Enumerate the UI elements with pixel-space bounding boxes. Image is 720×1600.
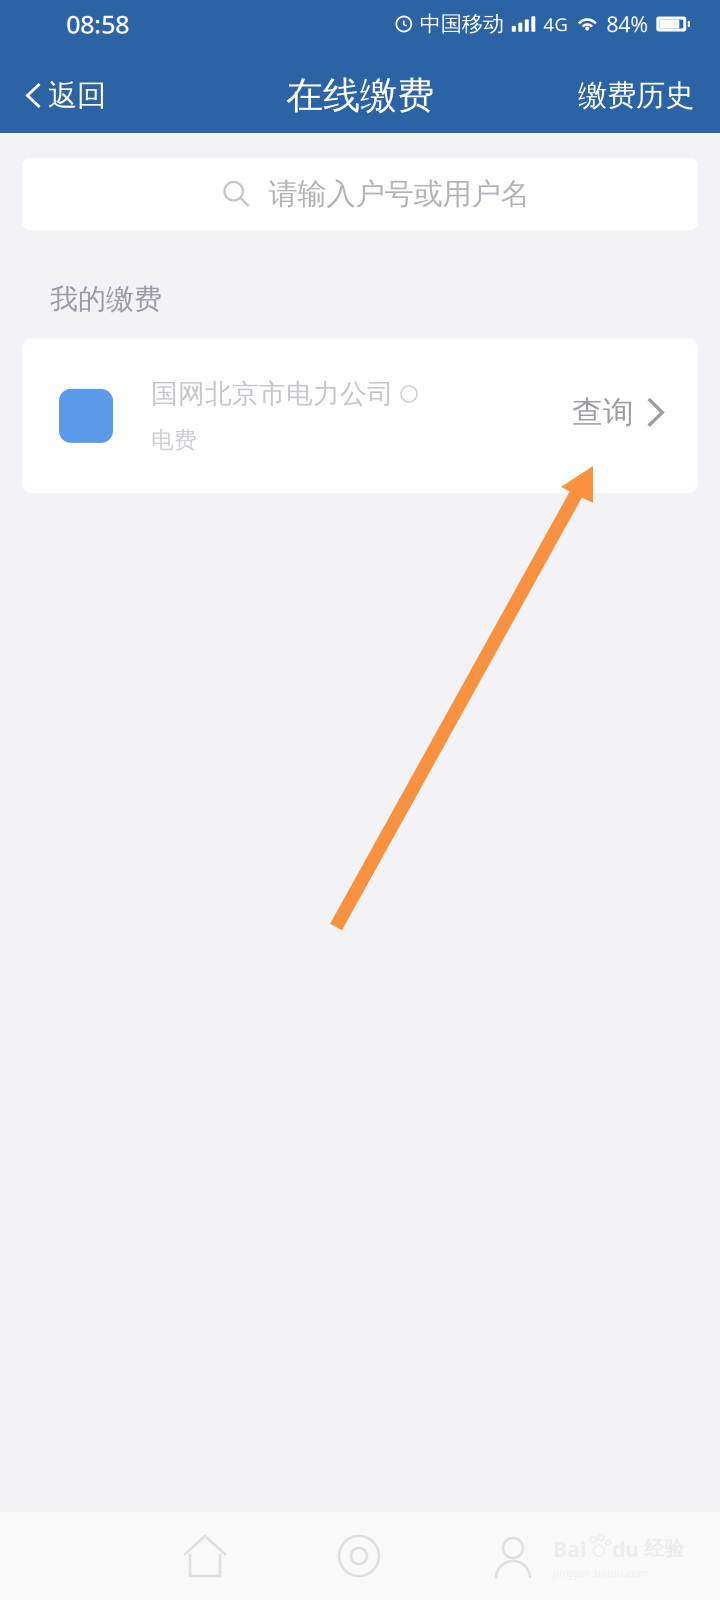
staticText: 4G (543, 12, 568, 36)
staticText: 电费 (151, 426, 197, 454)
staticText: 国网北京市电力公司 (151, 378, 394, 410)
staticText: 我的缴费 (50, 282, 162, 316)
staticText: du (612, 1534, 639, 1563)
staticText: 中国移动 (420, 11, 504, 37)
button[interactable]: 首页 (128, 1512, 282, 1600)
button[interactable]: 我的 (436, 1512, 590, 1600)
staticText: 在线缴费 (286, 73, 434, 118)
button[interactable]: 请输入户号或用户名 (22, 158, 698, 230)
staticText: 缴费历史 (578, 77, 694, 113)
staticText: 84% (606, 10, 648, 38)
button[interactable]: 返回 (0, 61, 122, 129)
button[interactable]: 国网北京市电力公司 (22, 338, 698, 493)
staticText: 查询 (572, 394, 634, 431)
staticText: Bai (553, 1534, 586, 1563)
button[interactable]: 服务 (282, 1512, 436, 1600)
staticText: 经验 (644, 1536, 684, 1561)
staticText: 请输入户号或用户名 (268, 176, 529, 212)
staticText: 08:58 (66, 7, 129, 41)
staticText: 返回 (48, 77, 106, 113)
button[interactable]: 缴费历史 (562, 61, 720, 129)
